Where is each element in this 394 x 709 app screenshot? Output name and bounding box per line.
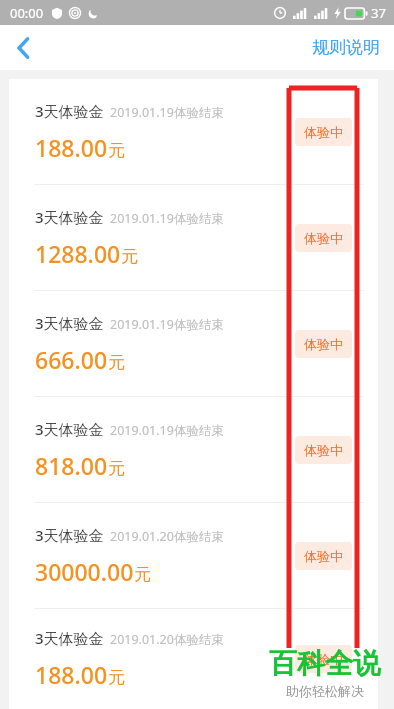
staticText: 2019.01.19体验结束: [110, 422, 224, 439]
staticText: 188.00: [35, 659, 108, 690]
staticText: 元: [108, 352, 125, 373]
staticText: 元: [134, 564, 151, 585]
staticText: 元: [108, 667, 125, 688]
staticText: 3天体验金: [35, 313, 104, 333]
staticText: 体验中: [304, 230, 343, 246]
button[interactable]: 体验中: [295, 645, 352, 673]
staticText: 百科全说: [269, 646, 381, 681]
staticText: 体验中: [304, 336, 343, 352]
staticText: 3天体验金: [35, 525, 104, 545]
staticText: 1288.00: [35, 238, 121, 269]
button[interactable]: 体验中: [295, 542, 352, 570]
staticText: 元: [121, 246, 138, 267]
staticText: 37: [371, 4, 386, 22]
staticText: 元: [108, 140, 125, 161]
staticText: 188.00: [35, 132, 108, 163]
button[interactable]: 体验中: [295, 436, 352, 464]
staticText: 体验中: [304, 548, 343, 564]
staticText: 3天体验金: [35, 101, 104, 121]
button[interactable]: 体验中: [295, 118, 352, 146]
staticText: 818.00: [35, 450, 108, 481]
staticText: 元: [108, 458, 125, 479]
button[interactable]: Back: [0, 25, 46, 70]
button[interactable]: 3天体验金: [9, 397, 378, 502]
staticText: 体验中: [304, 651, 343, 667]
staticText: 体验中: [304, 124, 343, 140]
staticText: 2019.01.20体验结束: [110, 631, 224, 648]
button[interactable]: 3天体验金: [9, 79, 378, 184]
staticText: 2019.01.20体验结束: [110, 528, 224, 545]
button[interactable]: 3天体验金: [9, 503, 378, 608]
staticText: 助你轻松解决: [286, 683, 364, 699]
staticText: 666.00: [35, 344, 108, 375]
button[interactable]: 规则说明: [298, 31, 394, 64]
staticText: 30000.00: [35, 556, 134, 587]
staticText: 体验中: [304, 442, 343, 458]
staticText: 00:00: [10, 4, 44, 22]
staticText: 2019.01.19体验结束: [110, 316, 224, 333]
button[interactable]: 3天体验金: [9, 609, 378, 709]
staticText: 规则说明: [312, 37, 380, 58]
staticText: 3天体验金: [35, 419, 104, 439]
staticText: 2019.01.19体验结束: [110, 104, 224, 121]
button[interactable]: 3天体验金: [9, 185, 378, 290]
button[interactable]: 体验中: [295, 224, 352, 252]
staticText: 2019.01.19体验结束: [110, 210, 224, 227]
staticText: 3天体验金: [35, 207, 104, 227]
staticText: 3天体验金: [35, 628, 104, 648]
button[interactable]: 3天体验金: [9, 291, 378, 396]
button[interactable]: 体验中: [295, 330, 352, 358]
